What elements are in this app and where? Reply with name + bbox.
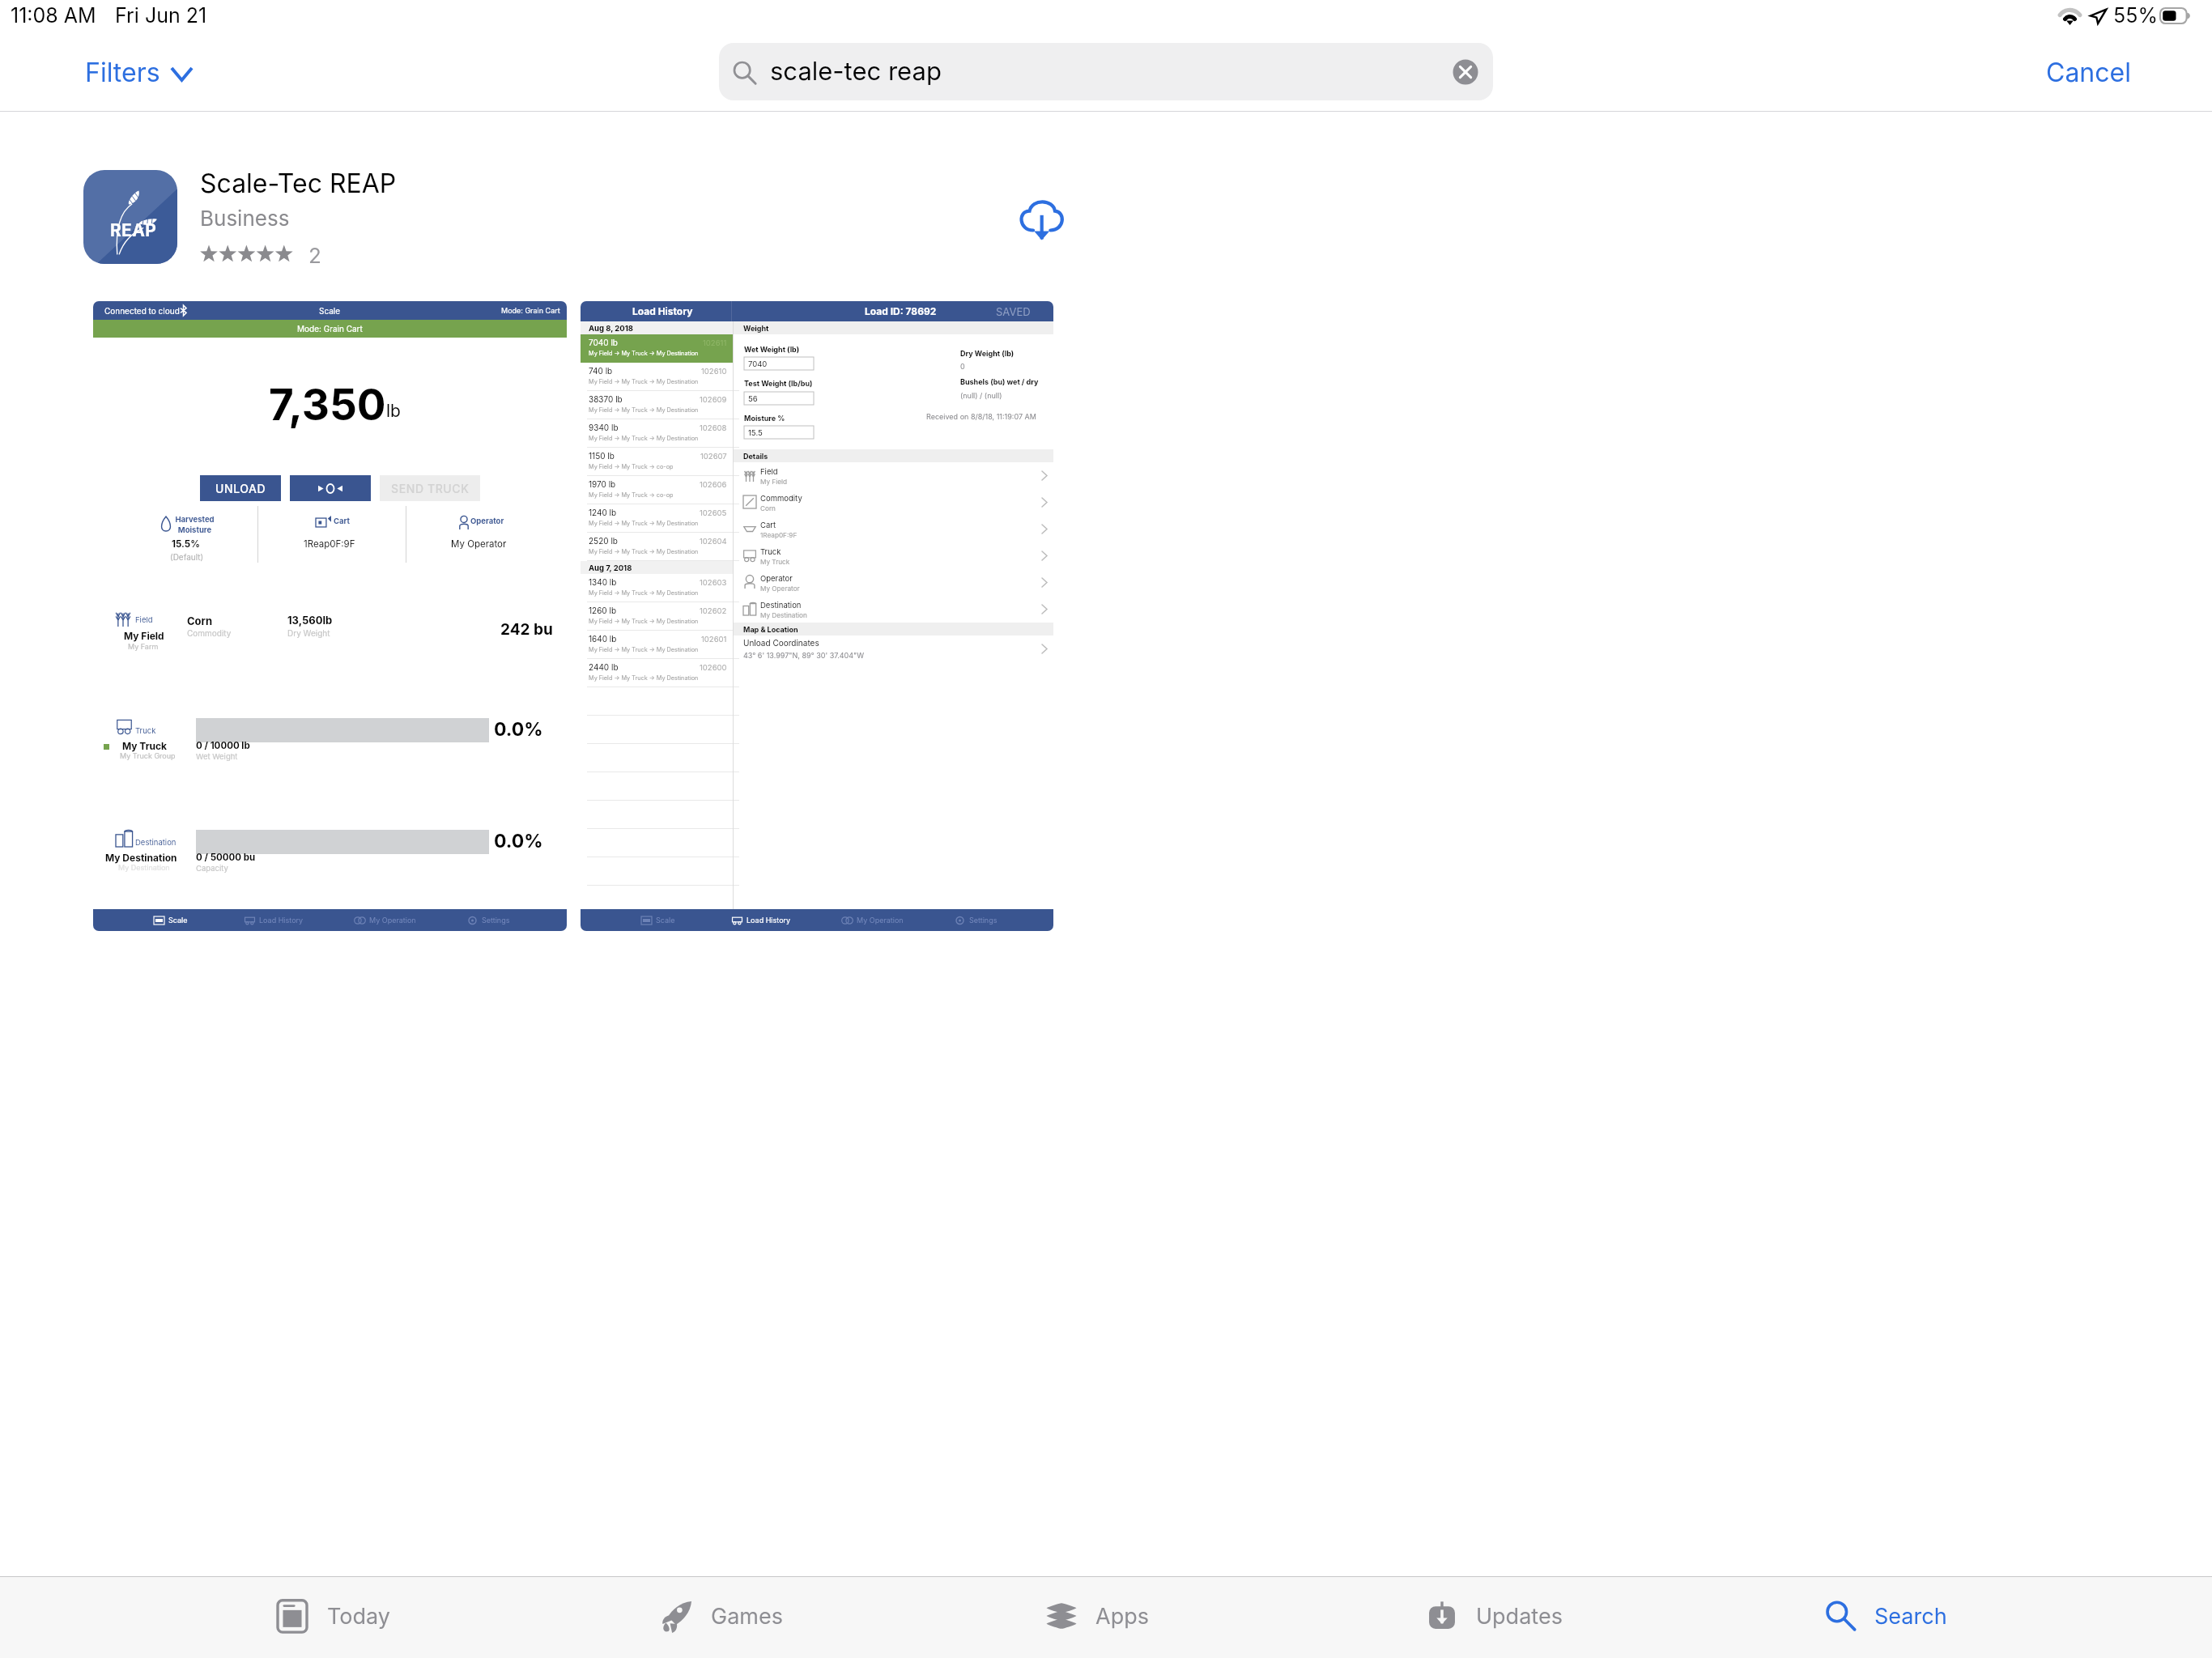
- button[interactable]: Unload Coordinates: [734, 636, 1053, 662]
- button[interactable]: Scale-Tec REAP app icon: [83, 170, 177, 264]
- staticText: My Destination: [118, 863, 170, 872]
- staticText: My Field → My Truck → co-op: [589, 463, 674, 470]
- button[interactable]: 1260 lb: [581, 602, 733, 631]
- button[interactable]: UNLOAD: [200, 475, 281, 501]
- button[interactable]: Apps: [1044, 1587, 1149, 1645]
- staticText: 1Reap0F:9F: [760, 531, 798, 539]
- button[interactable]: Download app: [1018, 198, 1063, 240]
- staticText: Load History: [259, 916, 304, 925]
- staticText: 15.5%: [172, 538, 200, 550]
- staticText: 0 / 10000 lb: [196, 740, 250, 751]
- button[interactable]: Settings: [467, 916, 510, 925]
- button[interactable]: Load History: [245, 916, 304, 925]
- button[interactable]: Operator: [734, 569, 1053, 596]
- button[interactable]: Scale: [641, 916, 675, 925]
- staticText: My Field → My Truck → My Destination: [589, 520, 699, 527]
- staticText: 1260 lb: [589, 606, 617, 615]
- staticText: Search: [1874, 1603, 1947, 1630]
- button[interactable]: 7040: [744, 357, 814, 370]
- button[interactable]: 38370 lb: [581, 391, 733, 419]
- staticText: 0.0%: [494, 718, 543, 741]
- staticText: 13,560lb: [287, 614, 333, 627]
- staticText: 11:08 AM: [11, 3, 96, 28]
- staticText: Updates: [1476, 1603, 1563, 1630]
- staticText: 7040 lb: [589, 338, 618, 347]
- staticText: 7040: [748, 359, 768, 368]
- staticText: 1340 lb: [589, 577, 617, 587]
- staticText: Aug 8, 2018: [589, 324, 634, 333]
- button[interactable]: 15.5: [744, 426, 814, 439]
- button[interactable]: Scale: [154, 916, 188, 925]
- staticText: (Default): [170, 552, 204, 562]
- button[interactable]: 740 lb: [581, 363, 733, 391]
- staticText: Details: [743, 452, 768, 461]
- staticText: Bushels (bu) wet / dry: [960, 377, 1039, 386]
- staticText: 1Reap0F:9F: [304, 538, 355, 550]
- staticText: My Field → My Truck → My Destination: [589, 378, 699, 385]
- staticText: 102600: [700, 663, 727, 672]
- staticText: Scale-Tec REAP: [200, 168, 397, 199]
- button[interactable]: Updates: [1425, 1587, 1563, 1645]
- button[interactable]: My Operation: [355, 916, 416, 925]
- staticText: Scale: [319, 306, 341, 316]
- button[interactable]: Settings: [955, 916, 998, 925]
- button[interactable]: My Operation: [842, 916, 904, 925]
- button[interactable]: Destination: [734, 596, 1053, 623]
- button[interactable]: Clear search: [1451, 57, 1480, 87]
- button[interactable]: 7040 lb: [581, 334, 733, 363]
- button[interactable]: 1240 lb: [581, 504, 733, 533]
- staticText: 102608: [700, 423, 727, 432]
- staticText: 0.0%: [494, 830, 543, 852]
- staticText: Commodity: [187, 628, 232, 638]
- staticText: My Field → My Truck → My Destination: [589, 646, 699, 653]
- staticText: Connected to cloud: [104, 306, 180, 316]
- button[interactable]: Commodity: [734, 489, 1053, 516]
- staticText: Test Weight (lb/bu): [744, 379, 813, 388]
- button[interactable]: Filters: [75, 52, 202, 93]
- button[interactable]: 1150 lb: [581, 448, 733, 476]
- button[interactable]: 2520 lb: [581, 533, 733, 561]
- button[interactable]: Cancel: [2036, 52, 2141, 93]
- staticText: Capacity: [196, 864, 228, 873]
- button[interactable]: Games: [660, 1587, 783, 1645]
- staticText: Received on 8/8/18, 11:19:07 AM: [926, 412, 1036, 421]
- staticText: Truck: [760, 547, 781, 556]
- button[interactable]: Cart: [734, 516, 1053, 542]
- staticText: 0: [960, 362, 965, 371]
- staticText: My Farm: [128, 642, 159, 651]
- button[interactable]: Search: [1823, 1587, 1947, 1645]
- staticText: My Field → My Truck → My Destination: [589, 618, 699, 625]
- staticText: My Destination: [760, 611, 807, 619]
- staticText: Cancel: [2046, 57, 2131, 88]
- staticText: 102607: [700, 452, 727, 461]
- staticText: Moisture %: [744, 414, 785, 423]
- button[interactable]: Zero scale: [290, 475, 371, 501]
- button[interactable]: 9340 lb: [581, 419, 733, 448]
- staticText: Commodity: [760, 494, 802, 503]
- button[interactable]: Today: [278, 1587, 390, 1645]
- button[interactable]: Field: [734, 462, 1053, 489]
- staticText: 2: [308, 243, 321, 268]
- staticText: Harvested Moisture: [175, 515, 215, 534]
- button[interactable]: 1640 lb: [581, 631, 733, 659]
- staticText: Corn: [760, 504, 776, 512]
- button[interactable]: Truck: [734, 542, 1053, 569]
- button[interactable]: 2440 lb: [581, 659, 733, 687]
- button[interactable]: SEND TRUCK: [380, 475, 480, 501]
- staticText: My Destination: [105, 852, 177, 864]
- staticText: My Operation: [369, 916, 416, 925]
- staticText: 0 / 50000 bu: [196, 852, 256, 863]
- staticText: Wet Weight: [196, 752, 238, 761]
- staticText: Dry Weight: [287, 628, 330, 638]
- staticText: 55%: [2113, 3, 2158, 28]
- staticText: 1150 lb: [589, 451, 615, 461]
- button[interactable]: 56: [744, 392, 814, 405]
- button[interactable]: 1340 lb: [581, 574, 733, 602]
- button[interactable]: scale-tec reap: [719, 43, 1493, 100]
- button[interactable]: Load History: [732, 916, 791, 925]
- staticText: My Field → My Truck → My Destination: [589, 674, 699, 682]
- staticText: 102611: [703, 338, 727, 347]
- button[interactable]: 1970 lb: [581, 476, 733, 504]
- staticText: 102610: [701, 367, 727, 376]
- staticText: 1240 lb: [589, 508, 617, 517]
